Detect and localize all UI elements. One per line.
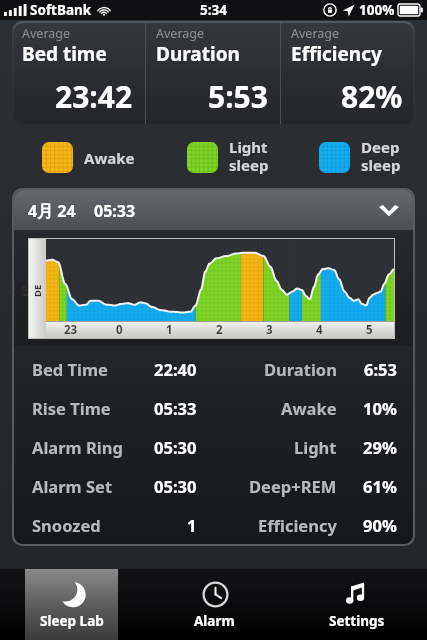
staticText: Alarm Ring (32, 436, 123, 458)
other: Sleep Lab (59, 581, 86, 608)
staticText: sleep (229, 155, 269, 175)
staticText: SoftBank (30, 1, 92, 19)
other: Expand (379, 205, 399, 217)
button[interactable]: Snoozed (14, 505, 413, 544)
button[interactable]: Sleep Lab (25, 569, 118, 640)
staticText: 4月 24 (28, 200, 76, 222)
button[interactable]: Bed Time (14, 350, 413, 388)
button[interactable]: Average (281, 21, 415, 126)
staticText: Light (229, 137, 268, 157)
staticText: 22:40 (154, 358, 197, 380)
staticText: Rise Time (32, 397, 111, 419)
staticText: 82% (341, 76, 403, 117)
staticText: 29% (363, 436, 397, 458)
staticText: 5:53 (208, 76, 268, 117)
staticText: 100% (359, 1, 395, 19)
staticText: 90% (363, 514, 397, 536)
staticText: Efficiency (291, 41, 382, 67)
staticText: 61% (363, 475, 397, 497)
staticText: Average (291, 25, 340, 42)
staticText: Snoozed (32, 514, 101, 536)
staticText: 05:33 (154, 397, 197, 419)
button[interactable]: Alarm (168, 569, 261, 640)
button[interactable]: Rise Time (14, 388, 413, 427)
staticText: 5:34 (200, 1, 227, 19)
staticText: 6:53 (364, 358, 397, 380)
staticText: Average (156, 25, 205, 42)
button[interactable]: Alarm Set (14, 466, 413, 505)
staticText: Light (294, 436, 337, 458)
staticText: Bed Time (32, 358, 108, 380)
button[interactable]: Average (146, 21, 280, 126)
staticText: Duration (156, 41, 240, 67)
staticText: 10% (363, 397, 397, 419)
staticText: Alarm Set (32, 475, 113, 497)
staticText: 05:33 (94, 200, 136, 222)
staticText: 23 (64, 322, 78, 338)
staticText: Deep (361, 137, 400, 157)
button[interactable]: Alarm Ring (14, 427, 413, 466)
button[interactable]: Settings (310, 569, 403, 640)
staticText: 1 (166, 322, 173, 338)
staticText: 2 (216, 322, 223, 338)
button[interactable]: 4月 24 (14, 190, 413, 231)
staticText: 05:30 (154, 436, 197, 458)
staticText: 05:30 (154, 475, 197, 497)
staticText: sleep (361, 155, 401, 175)
button[interactable]: Average (12, 21, 145, 126)
staticText: Duration (264, 358, 337, 380)
other: Alarm (202, 581, 229, 608)
staticText: Deep+REM (249, 475, 337, 497)
staticText: SLEEP DEPTH (14, 280, 70, 297)
staticText: Alarm (194, 612, 235, 630)
staticText: Awake (281, 397, 337, 419)
staticText: Awake (84, 148, 135, 168)
staticText: Settings (329, 612, 385, 630)
staticText: 4 (316, 322, 323, 338)
staticText: 23:42 (55, 76, 133, 117)
staticText: Bed time (22, 41, 107, 67)
staticText: Sleep Lab (40, 612, 104, 630)
staticText: Average (22, 25, 71, 42)
other: Settings (344, 581, 371, 608)
staticText: Efficiency (258, 514, 337, 536)
staticText: 5 (366, 322, 373, 338)
staticText: 3 (266, 322, 273, 338)
staticText: 0 (116, 322, 123, 338)
staticText: 1 (187, 514, 197, 536)
